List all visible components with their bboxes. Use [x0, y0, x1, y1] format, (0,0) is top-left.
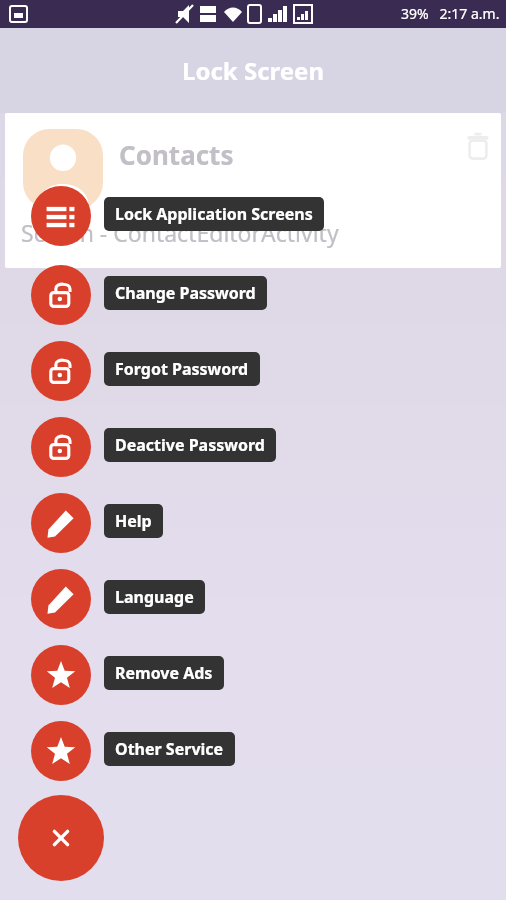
button[interactable]: Remove Ads	[104, 656, 224, 690]
staticText: Change Password	[115, 282, 256, 304]
staticText: Screen - ContactEditorActivity	[21, 217, 339, 248]
button[interactable]: Contacts	[5, 113, 501, 268]
button[interactable]: Change Password	[31, 265, 91, 325]
staticText: Remove Ads	[115, 662, 213, 684]
staticText: Deactive Password	[115, 434, 265, 456]
button[interactable]: Close menu	[18, 795, 104, 881]
button[interactable]: Lock Application Screens	[104, 197, 324, 231]
staticText: Contacts	[119, 137, 234, 172]
button[interactable]: Other Service	[104, 732, 235, 766]
button[interactable]: Remove Ads	[31, 645, 91, 705]
staticText: Lock Screen	[182, 54, 325, 87]
staticText: Language	[115, 586, 194, 608]
staticText: Other Service	[115, 738, 224, 760]
staticText: Forgot Password	[115, 358, 249, 380]
staticText: Lock Application Screens	[115, 203, 313, 225]
button[interactable]: Forgot Password	[31, 341, 91, 401]
button[interactable]: Deactive Password	[104, 428, 276, 462]
button[interactable]: Change Password	[104, 276, 267, 310]
staticText: Help	[115, 510, 152, 532]
button[interactable]: Language	[104, 580, 205, 614]
button[interactable]: Language	[31, 569, 91, 629]
button[interactable]: Other Service	[31, 721, 91, 781]
button[interactable]: Delete	[455, 123, 501, 169]
button[interactable]: Forgot Password	[104, 352, 260, 386]
button[interactable]: Help	[104, 504, 163, 538]
button[interactable]: Help	[31, 493, 91, 553]
button[interactable]: Deactive Password	[31, 417, 91, 477]
staticText: 39% 2:17 a.m.	[401, 4, 500, 23]
button[interactable]: Lock Application Screens	[31, 186, 91, 246]
